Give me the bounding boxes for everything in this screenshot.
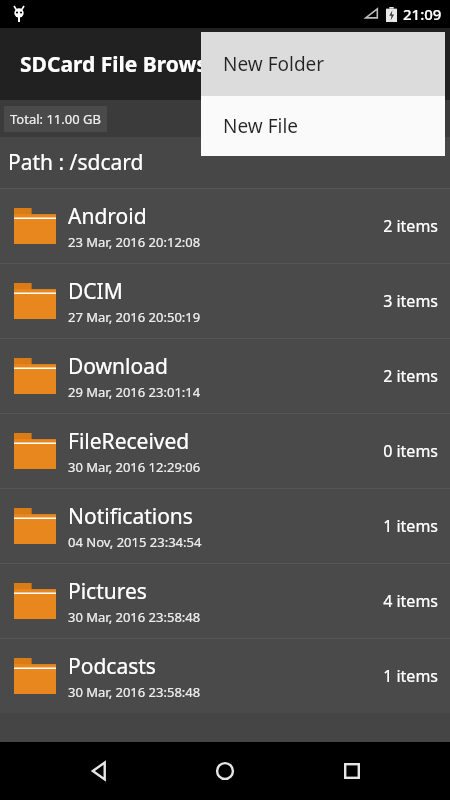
staticText: Path : /sdcard: [8, 148, 144, 177]
staticText: New File: [223, 113, 299, 139]
button[interactable]: New File: [201, 96, 445, 156]
staticText: 4 items: [383, 590, 438, 612]
button[interactable]: New Folder: [201, 32, 445, 96]
staticText: 30 Mar, 2016 23:58:48: [68, 608, 201, 626]
button[interactable]: Download: [0, 338, 450, 413]
button[interactable]: FileReceived: [0, 413, 450, 488]
button[interactable]: Back: [71, 743, 127, 799]
staticText: 1 items: [383, 515, 438, 537]
staticText: FileReceived: [68, 427, 190, 456]
button[interactable]: DCIM: [0, 263, 450, 338]
staticText: Total: 11.00 GB: [10, 110, 101, 128]
staticText: 0 items: [383, 440, 438, 462]
staticText: Download: [68, 352, 168, 381]
button[interactable]: Recent apps: [324, 743, 380, 799]
staticText: 30 Mar, 2016 12:29:06: [68, 458, 201, 476]
staticText: Android: [68, 202, 147, 231]
staticText: 04 Nov, 2015 23:34:54: [68, 533, 202, 551]
staticText: Podcasts: [68, 652, 156, 681]
button[interactable]: Podcasts: [0, 638, 450, 713]
staticText: New Folder: [223, 51, 325, 77]
staticText: 21:09: [403, 4, 442, 24]
staticText: 23 Mar, 2016 20:12:08: [68, 233, 201, 251]
staticText: 29 Mar, 2016 23:01:14: [68, 383, 201, 401]
button[interactable]: Pictures: [0, 563, 450, 638]
button[interactable]: Home: [197, 743, 253, 799]
staticText: 27 Mar, 2016 20:50:19: [68, 308, 201, 326]
staticText: 2 items: [383, 215, 438, 237]
button[interactable]: Notifications: [0, 488, 450, 563]
staticText: 2 items: [383, 365, 438, 387]
staticText: Pictures: [68, 577, 147, 606]
button[interactable]: Android: [0, 188, 450, 263]
staticText: DCIM: [68, 277, 123, 306]
staticText: Notifications: [68, 502, 193, 531]
staticText: 3 items: [383, 290, 438, 312]
staticText: 30 Mar, 2016 23:58:48: [68, 683, 201, 701]
staticText: SDCard File Browser: [20, 50, 229, 79]
staticText: 1 items: [383, 665, 438, 687]
